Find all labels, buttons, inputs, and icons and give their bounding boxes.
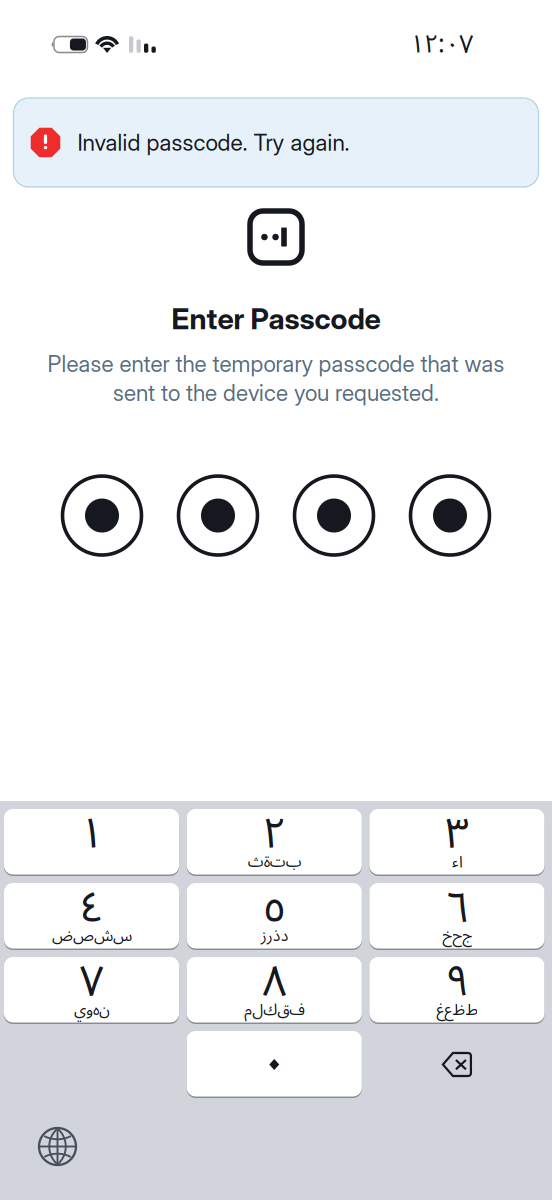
button[interactable]: ٤ — [4, 883, 179, 950]
staticText: ١٢:٠٧ — [410, 18, 473, 71]
staticText: ط‌ظ‌ع‌غ — [436, 993, 478, 1027]
staticText: ٧ — [80, 937, 104, 1027]
staticText: ٢ — [262, 789, 286, 879]
staticText: Please enter the temporary passcode that… — [47, 350, 504, 377]
staticText: د‌ذ‌ر‌ز — [260, 919, 288, 953]
button[interactable]: ٣ — [369, 809, 544, 876]
staticText: sent to the device you requested. — [113, 379, 439, 407]
staticText: Enter Passcode — [171, 301, 380, 336]
button[interactable]: ٢ — [187, 809, 362, 876]
button[interactable]: ٧ — [4, 957, 179, 1024]
button[interactable] — [187, 1031, 362, 1098]
staticText: ن‌ه‌و‌ي — [74, 993, 110, 1027]
staticText: ا‌ء — [451, 845, 462, 879]
staticText: ٤ — [80, 863, 104, 953]
button[interactable]: ٥ — [187, 883, 362, 950]
button[interactable]: Next keyboard — [39, 1128, 76, 1165]
staticText: Invalid passcode. Try again. — [77, 129, 349, 156]
staticText: ف‌ق‌ك‌ل‌م — [244, 993, 305, 1027]
staticText: ٣ — [445, 789, 469, 879]
staticText: ١ — [80, 789, 104, 879]
staticText: ٩ — [445, 937, 469, 1027]
staticText: ج‌ح‌خ — [442, 919, 472, 953]
staticText: ٥ — [262, 863, 286, 953]
button[interactable]: Delete — [369, 1031, 544, 1098]
staticText: ٨ — [262, 937, 286, 1027]
staticText: ب‌ت‌ة‌ث — [247, 845, 301, 879]
button[interactable]: ٩ — [369, 957, 544, 1024]
button[interactable]: ١ — [4, 809, 179, 876]
staticText: س‌ش‌ص‌ض — [52, 919, 132, 953]
staticText: ٦ — [445, 863, 469, 953]
button[interactable]: ٦ — [369, 883, 544, 950]
button[interactable]: ٨ — [187, 957, 362, 1024]
